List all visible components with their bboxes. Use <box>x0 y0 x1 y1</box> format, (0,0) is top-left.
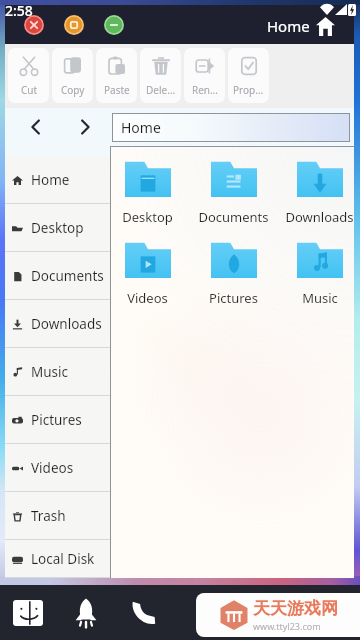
staticText: Dele… <box>146 83 176 97</box>
button[interactable]: Trash <box>5 492 110 540</box>
button[interactable]: Ren… <box>184 48 225 103</box>
button[interactable]: Cut <box>8 48 49 103</box>
staticText: Ren… <box>192 83 218 97</box>
button[interactable]: Home <box>112 113 350 142</box>
staticText: Videos <box>31 459 74 477</box>
button[interactable]: Pictures <box>5 396 110 444</box>
staticText: Cut <box>21 83 38 97</box>
staticText: Copy <box>61 83 85 97</box>
button[interactable]: Desktop <box>105 161 190 226</box>
button[interactable]: Local Disk <box>5 540 110 578</box>
staticText: 2:58 <box>5 1 33 20</box>
button[interactable]: Window button <box>24 15 44 35</box>
staticText: Trash <box>31 507 66 525</box>
staticText: Videos <box>127 289 168 307</box>
staticText: Downloads <box>285 208 354 226</box>
staticText: Desktop <box>122 208 173 226</box>
button[interactable]: Forward <box>72 114 98 140</box>
button[interactable]: Finder <box>10 595 46 631</box>
button[interactable]: Paste <box>96 48 137 103</box>
button[interactable]: Videos <box>5 444 110 492</box>
button[interactable]: Music <box>5 348 110 396</box>
staticText: Desktop <box>31 219 84 237</box>
staticText: Local Disk <box>31 550 95 568</box>
staticText: Home <box>121 118 161 137</box>
staticText: Home <box>31 171 70 189</box>
button[interactable]: Documents <box>5 252 110 300</box>
button[interactable]: Window button <box>64 15 84 35</box>
staticText: Pictures <box>209 289 258 307</box>
button[interactable]: Downloads <box>277 161 360 226</box>
staticText: 天天游戏网 <box>253 598 338 619</box>
button[interactable]: Prop… <box>228 48 269 103</box>
staticText: Pictures <box>31 411 82 429</box>
staticText: Prop… <box>233 83 264 97</box>
staticText: Downloads <box>31 315 102 333</box>
staticText: Home <box>267 16 310 36</box>
staticText: Music <box>31 363 69 381</box>
button[interactable]: Documents <box>191 161 276 226</box>
staticText: www.ttyl23.com <box>253 620 321 632</box>
button[interactable]: Music <box>277 242 360 307</box>
button[interactable]: Back <box>23 114 49 140</box>
staticText: Paste <box>104 83 130 97</box>
staticText: Documents <box>198 208 269 226</box>
staticText: Documents <box>31 267 104 285</box>
button[interactable]: Phone <box>126 595 162 631</box>
button[interactable]: Copy <box>52 48 93 103</box>
button[interactable]: Window button <box>104 15 124 35</box>
button[interactable]: Home <box>5 156 110 204</box>
button[interactable]: Launchpad <box>68 595 104 631</box>
button[interactable]: Downloads <box>5 300 110 348</box>
button[interactable]: Pictures <box>191 242 276 307</box>
button[interactable]: Videos <box>105 242 190 307</box>
button[interactable]: Dele… <box>140 48 181 103</box>
button[interactable]: Desktop <box>5 204 110 252</box>
staticText: Music <box>302 289 338 307</box>
